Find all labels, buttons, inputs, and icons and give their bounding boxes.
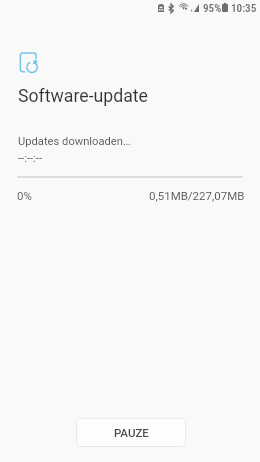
staticText: Updates downloaden… [18,135,131,148]
button[interactable]: PAUZE [76,418,186,447]
staticText: 0% [17,189,32,202]
staticText: Software-update [18,86,148,107]
staticText: 10:35 [231,2,257,15]
other: Software update [18,50,42,76]
staticText: 95% [203,2,222,15]
staticText: 0,51MB/227,07MB [149,189,245,202]
staticText: --:--:-- [18,152,42,165]
staticText: PAUZE [114,426,149,439]
